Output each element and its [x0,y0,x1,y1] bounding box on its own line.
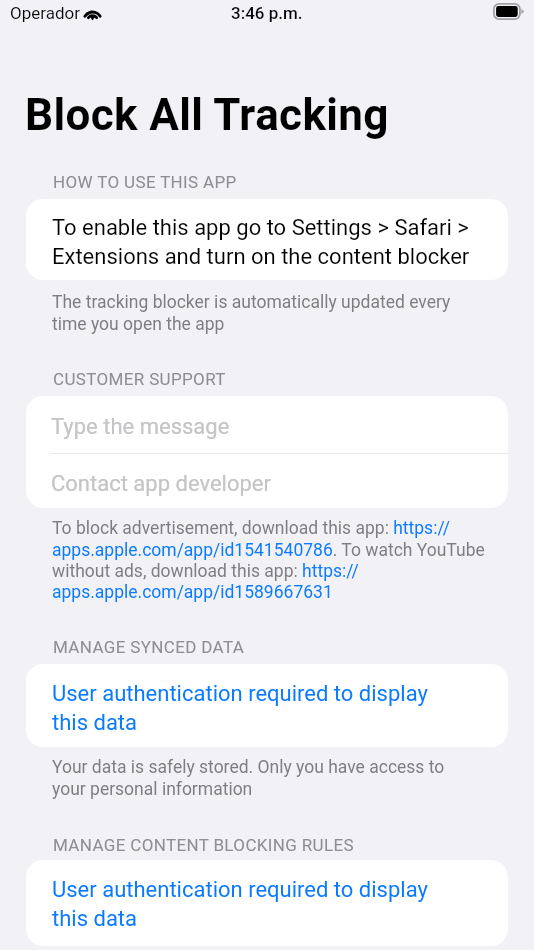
other: Battery [493,3,525,20]
staticText: To block advertisement, download this ap… [52,518,485,602]
staticText: To enable this app go to Settings > Safa… [52,215,470,269]
staticText: 3:46 p.m. [231,3,303,23]
button[interactable]: Contact app developer [26,454,508,508]
staticText: CUSTOMER SUPPORT [53,369,226,389]
button[interactable]: User authentication required to display … [26,664,508,747]
staticText: Block All Tracking [25,89,389,141]
staticText: Your data is safely stored. Only you hav… [52,757,445,799]
staticText: MANAGE CONTENT BLOCKING RULES [53,835,354,855]
staticText: Type the message [51,414,230,440]
other: Wi-Fi [82,5,103,21]
staticText: MANAGE SYNCED DATA [53,637,245,657]
staticText: The tracking blocker is automatically up… [52,292,451,334]
staticText: HOW TO USE THIS APP [53,172,237,192]
button[interactable]: User authentication required to display … [26,860,508,946]
staticText: User authentication required to display … [52,681,468,747]
staticText: User authentication required to display … [52,877,468,946]
button[interactable]: Type the message [26,396,508,453]
staticText: Operador [10,3,80,23]
staticText: Contact app developer [51,471,271,497]
